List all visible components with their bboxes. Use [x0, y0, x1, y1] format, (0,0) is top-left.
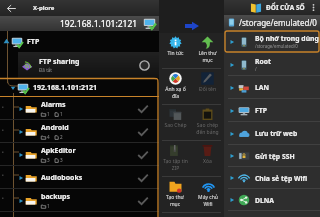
- staticText: 1: [60, 111, 63, 117]
- staticText: Tạo thư mục: [166, 194, 184, 208]
- button[interactable]: Xóa: [191, 141, 224, 177]
- staticText: Root: [255, 57, 271, 66]
- button[interactable]: FTP: [0, 31, 159, 52]
- button[interactable]: backups: [0, 189, 159, 212]
- button[interactable]: /storage/emulated/0: [224, 15, 320, 30]
- button[interactable]: DLNA: [224, 189, 320, 211]
- staticText: /: [255, 66, 257, 72]
- button[interactable]: Máy chủ Wifi: [191, 177, 224, 213]
- button[interactable]: Lưu trữ web: [224, 122, 320, 145]
- staticText: 192.168.1.101:2121: [33, 83, 97, 93]
- button[interactable]: 192.168.1.101:2121: [0, 78, 159, 97]
- button[interactable]: More options: [306, 0, 320, 15]
- staticText: FTP sharing: [39, 57, 80, 67]
- staticText: Lưu trữ web: [255, 129, 298, 138]
- staticText: /storage/emulated/0: [239, 17, 317, 28]
- staticText: 2: [60, 134, 63, 140]
- staticText: Xóa: [203, 158, 212, 165]
- staticText: Android: [41, 123, 69, 133]
- button[interactable]: Android: [0, 120, 159, 143]
- staticText: Sao Chép: [164, 122, 187, 129]
- staticText: Alarms: [41, 100, 66, 110]
- staticText: X-plore: [33, 4, 55, 12]
- button[interactable]: Back: [0, 0, 22, 16]
- staticText: Tạo tập tin ZIP: [163, 158, 188, 172]
- staticText: LAN: [255, 83, 270, 92]
- staticText: ĐỔI CỬA SỐ: [266, 3, 305, 12]
- staticText: Bộ nhớ trong dùng chung: [255, 34, 320, 43]
- button[interactable]: Lên thư mục: [191, 33, 224, 69]
- staticText: 3: [47, 157, 50, 163]
- staticText: Gửi tệp SSH: [255, 152, 295, 161]
- button[interactable]: 192.168.1.101:2121: [0, 16, 159, 31]
- staticText: FTP: [255, 106, 267, 115]
- button[interactable]: Root: [224, 53, 320, 76]
- button[interactable]: ApkEditor: [0, 143, 159, 166]
- staticText: Ánh xạ ổ đĩa: [165, 86, 186, 100]
- staticText: 4: [47, 134, 50, 140]
- button[interactable]: Bộ nhớ trong dùng chung: [224, 30, 320, 53]
- button[interactable]: Alarms: [0, 97, 159, 120]
- staticText: Máy chủ Wifi: [198, 194, 218, 208]
- staticText: FTP: [27, 37, 40, 47]
- staticText: Chia sẻ tệp Wifi: [255, 174, 308, 183]
- staticText: Audiobooks: [41, 173, 83, 183]
- button[interactable]: Tạo tập tin ZIP: [159, 141, 191, 177]
- button[interactable]: Ánh xạ ổ đĩa: [159, 69, 191, 105]
- button[interactable]: Gửi tệp SSH: [224, 145, 320, 167]
- staticText: Đổi tên: [199, 86, 216, 93]
- button[interactable]: Đổi tên: [191, 69, 224, 105]
- button[interactable]: Toggle FTP sharing: [139, 60, 150, 71]
- staticText: 1: [47, 111, 50, 117]
- button[interactable]: Tin tức: [159, 33, 191, 69]
- staticText: Tin tức: [167, 50, 184, 57]
- button[interactable]: FTP: [224, 99, 320, 122]
- staticText: 1: [47, 203, 50, 209]
- button[interactable]: Tạo thư mục: [159, 177, 191, 213]
- staticText: 192.168.1.101:2121: [60, 18, 138, 30]
- button[interactable]: Audiobooks: [0, 166, 159, 189]
- button[interactable]: Chia sẻ tệp Wifi: [224, 167, 320, 189]
- button[interactable]: LAN: [224, 76, 320, 99]
- staticText: backups: [41, 192, 71, 202]
- staticText: Sao chép đến bảng: [196, 122, 219, 136]
- staticText: ApkEditor: [41, 146, 76, 156]
- button[interactable]: Sao Chép: [159, 105, 191, 141]
- button[interactable]: Sao chép đến bảng: [191, 105, 224, 141]
- staticText: 3: [60, 157, 63, 163]
- staticText: /storage/emulated/0: [255, 43, 298, 49]
- staticText: DLNA: [255, 196, 275, 205]
- button[interactable]: FTP sharing: [0, 52, 159, 78]
- staticText: Lên thư mục: [198, 50, 217, 64]
- staticText: Đã tắt: [39, 67, 53, 73]
